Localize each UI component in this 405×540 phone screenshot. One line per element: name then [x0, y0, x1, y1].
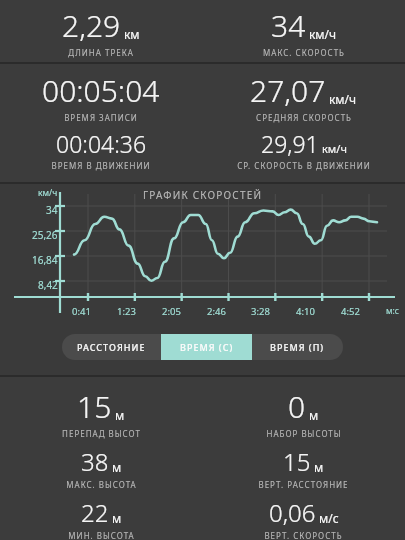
staticText: ВРЕМЯ (П) — [270, 341, 325, 353]
staticText: м/с — [319, 510, 339, 526]
staticText: 3:28 — [251, 305, 270, 318]
staticText: м — [314, 459, 324, 475]
staticText: 0 — [288, 386, 306, 427]
staticText: 34 — [46, 203, 58, 217]
staticText: 2:46 — [207, 305, 226, 318]
staticText: 0,06 — [269, 496, 316, 529]
staticText: 2,29 — [62, 5, 121, 46]
staticText: 00:04:36 — [56, 128, 147, 159]
staticText: РАССТОЯНИЕ — [77, 341, 146, 353]
staticText: МАКС. СКОРОСТЬ — [263, 47, 345, 58]
staticText: м — [112, 510, 122, 526]
staticText: СР. СКОРОСТЬ В ДВИЖЕНИИ — [237, 160, 371, 171]
staticText: км/ч — [38, 187, 58, 199]
staticText: км/ч — [329, 91, 357, 107]
staticText: СРЕДНЯЯ СКОРОСТЬ — [256, 112, 352, 123]
staticText: 4:10 — [296, 305, 315, 318]
staticText: НАБОР ВЫСОТЫ — [266, 428, 342, 439]
staticText: ВРЕМЯ (С) — [180, 341, 234, 353]
staticText: 38 — [81, 445, 109, 478]
staticText: км/ч — [309, 26, 337, 42]
staticText: м — [309, 407, 319, 423]
staticText: м — [115, 407, 125, 423]
staticText: ВЕРТ. СКОРОСТЬ — [264, 530, 343, 540]
staticText: МАКС. ВЫСОТА — [66, 479, 137, 490]
staticText: км/ч — [322, 141, 347, 156]
staticText: 8,42 — [38, 278, 58, 292]
button[interactable]: ВРЕМЯ (П) — [252, 334, 343, 360]
staticText: км — [124, 26, 140, 42]
staticText: 15 — [283, 445, 311, 478]
staticText: 29,91 — [261, 128, 319, 159]
staticText: 34 — [271, 5, 306, 46]
staticText: ВРЕМЯ В ДВИЖЕНИИ — [51, 160, 151, 171]
staticText: 00:05:04 — [42, 70, 160, 111]
staticText: м — [112, 459, 122, 475]
staticText: 25,26 — [32, 228, 58, 242]
staticText: 22 — [81, 496, 109, 529]
staticText: 1:23 — [117, 305, 136, 318]
button[interactable]: РАССТОЯНИЕ — [62, 334, 161, 360]
staticText: 27,07 — [250, 70, 326, 111]
staticText: 15 — [77, 386, 112, 427]
staticText: ВЕРТ. РАССТОЯНИЕ — [258, 479, 349, 490]
staticText: ГРАФИК СКОРОСТЕЙ — [143, 188, 263, 202]
staticText: м:с — [386, 305, 399, 317]
staticText: 0:41 — [72, 305, 91, 318]
staticText: ВРЕМЯ ЗАПИСИ — [64, 112, 138, 123]
staticText: МИН. ВЫСОТА — [68, 530, 135, 540]
staticText: ПЕРЕПАД ВЫСОТ — [62, 428, 141, 439]
staticText: 4:52 — [341, 305, 360, 318]
staticText: 16,84 — [32, 253, 58, 267]
staticText: ДЛИНА ТРЕКА — [68, 47, 134, 58]
staticText: 2:05 — [162, 305, 181, 318]
button[interactable]: ВРЕМЯ (С) — [161, 334, 252, 360]
